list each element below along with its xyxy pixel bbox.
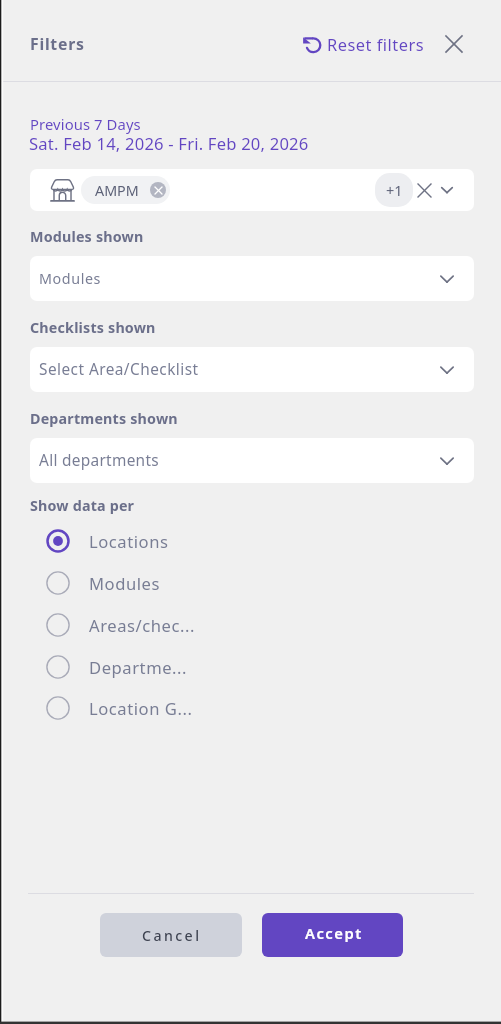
staticText: Cancel (142, 926, 202, 945)
staticText: Modules (89, 572, 160, 595)
button[interactable]: Modules (30, 256, 474, 301)
button[interactable]: AMPM (81, 176, 170, 204)
staticText: Location G... (89, 697, 193, 720)
button[interactable]: Location G... (0, 695, 501, 721)
staticText: Departme... (89, 656, 188, 679)
staticText: +1 (386, 180, 403, 200)
staticText: AMPM (95, 181, 139, 200)
button[interactable]: Cancel (100, 913, 242, 957)
button[interactable]: Departme... (0, 654, 501, 680)
staticText: Modules (39, 269, 102, 288)
button[interactable]: Areas/chec... (0, 612, 501, 638)
button[interactable]: Filters (20, 27, 92, 61)
button[interactable]: Locations (0, 528, 501, 554)
button[interactable]: Reset filters (302, 31, 425, 57)
staticText: Locations (89, 530, 169, 553)
button[interactable]: Accept (262, 913, 403, 957)
staticText: Accept (305, 923, 363, 943)
button[interactable]: Modules (0, 570, 501, 596)
staticText: All departments (39, 450, 159, 471)
button[interactable]: All departments (30, 438, 474, 483)
staticText: Modules shown (30, 227, 144, 246)
button[interactable]: Select Area/Checklist (30, 347, 474, 392)
button[interactable]: Close (442, 32, 466, 56)
staticText: Checklists shown (30, 318, 156, 337)
staticText: Sat. Feb 14, 2026 - Fri. Feb 20, 2026 (29, 132, 309, 155)
staticText: Departments shown (30, 409, 178, 428)
staticText: Previous 7 Days (30, 114, 141, 134)
button[interactable]: AMPM (30, 169, 474, 211)
staticText: Areas/chec... (89, 614, 195, 637)
staticText: Filters (30, 33, 85, 55)
staticText: Show data per (30, 496, 135, 515)
staticText: Reset filters (327, 33, 425, 55)
staticText: Select Area/Checklist (39, 359, 199, 380)
other: Remove AMPM (150, 182, 166, 198)
button[interactable]: Clear locations (412, 178, 436, 202)
